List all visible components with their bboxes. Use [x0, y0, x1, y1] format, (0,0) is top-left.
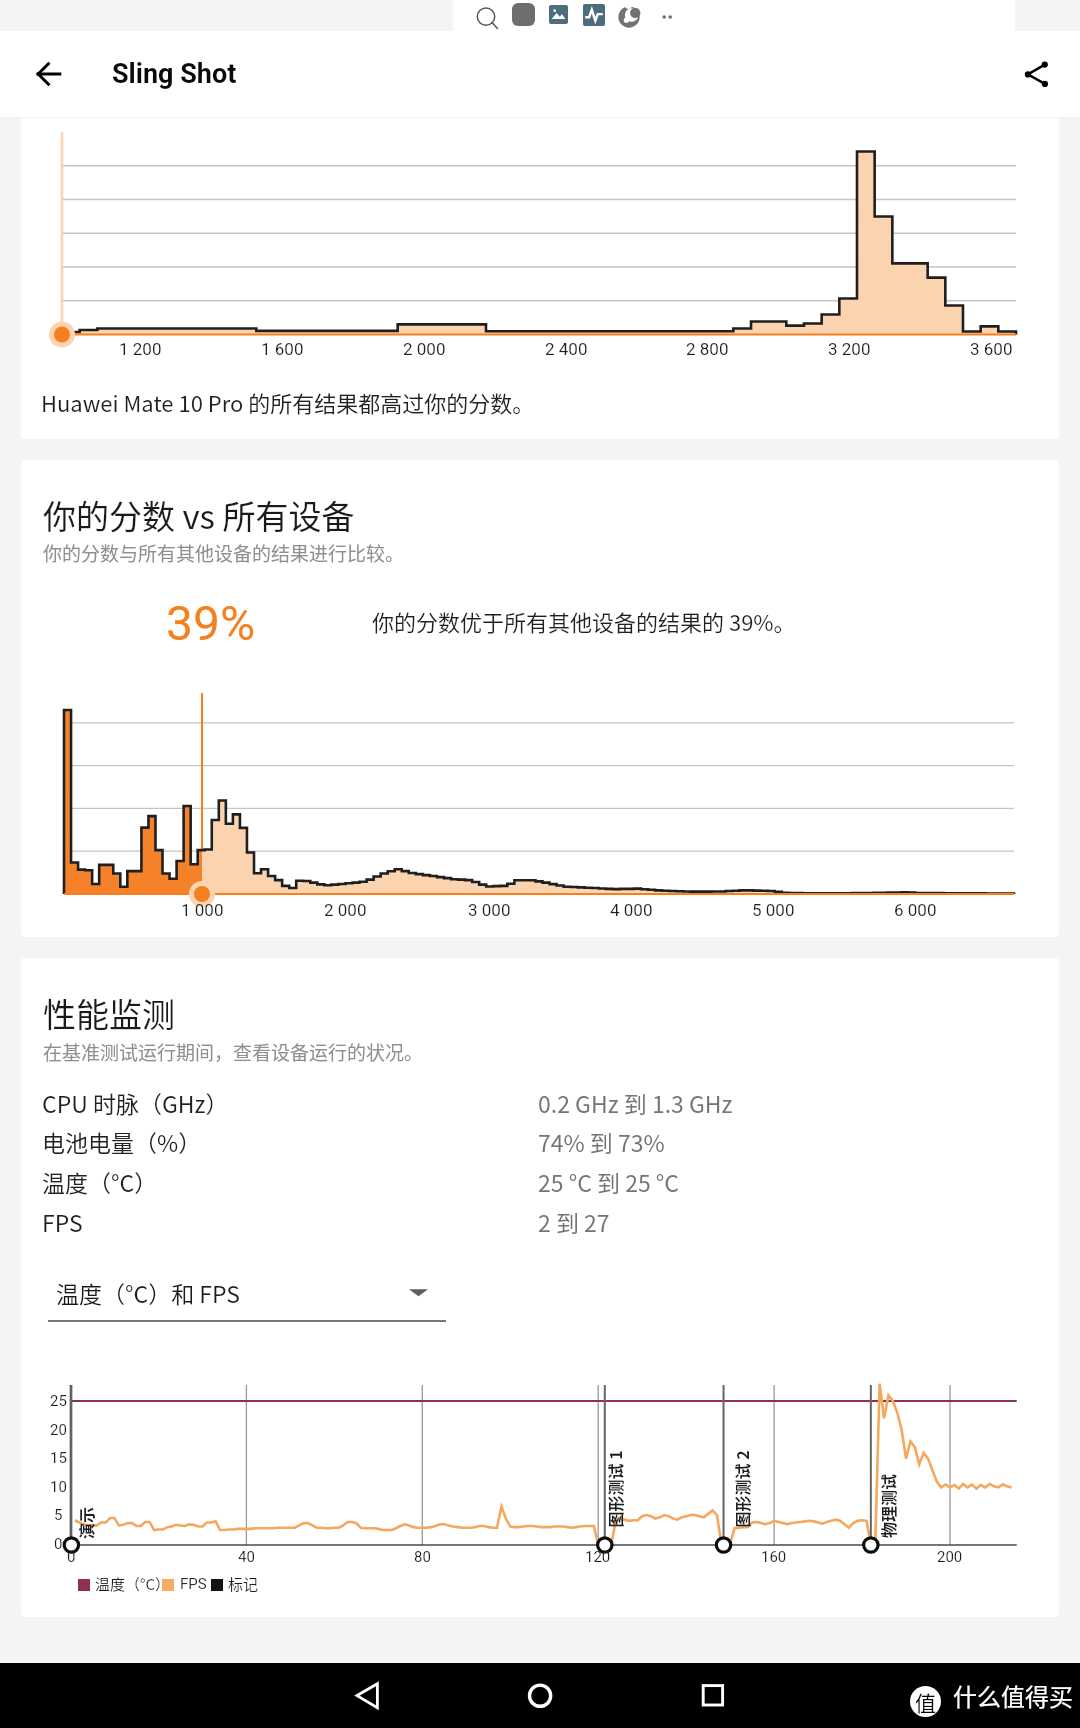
staticText: 你的分数与所有其他设备的结果进行比较。: [43, 539, 405, 567]
staticText: 0.2 GHz 到 1.3 GHz: [538, 1086, 733, 1119]
staticText: 2 800: [686, 339, 729, 359]
staticText: 1 600: [261, 339, 304, 359]
staticText: Sling Shot: [112, 58, 237, 90]
staticText: 图形测试 2: [729, 1449, 752, 1527]
staticText: 值: [915, 1687, 936, 1717]
staticText: 2 到 27: [538, 1205, 610, 1238]
staticText: 15: [50, 1449, 67, 1467]
staticText: 演示: [74, 1506, 97, 1539]
staticText: 性能监测: [43, 989, 175, 1037]
staticText: 25: [50, 1392, 67, 1410]
staticText: 标记: [228, 1573, 259, 1595]
staticText: 200: [937, 1548, 963, 1566]
staticText: 120: [585, 1548, 611, 1566]
button[interactable]: Share: [1010, 48, 1062, 100]
staticText: 在基准测试运行期间，查看设备运行的状况。: [43, 1038, 424, 1066]
staticText: 1 000: [181, 900, 224, 920]
staticText: 0: [67, 1548, 76, 1566]
button[interactable]: More: [657, 6, 681, 30]
staticText: 20: [50, 1421, 67, 1439]
button[interactable]: Stop: [512, 3, 535, 26]
staticText: 温度（°C）和 FPS: [56, 1276, 241, 1309]
staticText: 25 °C 到 25 °C: [538, 1165, 680, 1198]
staticText: 你的分数优于所有其他设备的结果的 39%。: [372, 605, 796, 637]
staticText: 160: [761, 1548, 787, 1566]
staticText: 6 000: [894, 900, 937, 920]
button[interactable]: 性能监测: [21, 958, 1059, 1617]
staticText: 40: [238, 1548, 255, 1566]
button[interactable]: Search: [473, 3, 504, 34]
button[interactable]: 1 200: [21, 118, 1059, 439]
button[interactable]: Image: [549, 5, 568, 24]
staticText: 图形测试 1: [602, 1449, 625, 1527]
button[interactable]: Home: [515, 1663, 565, 1713]
staticText: 2 000: [324, 900, 367, 920]
button[interactable]: Recents: [690, 1663, 740, 1713]
button[interactable]: Back: [23, 48, 75, 100]
staticText: 4 000: [610, 900, 653, 920]
staticText: Huawei Mate 10 Pro 的所有结果都高过你的分数。: [41, 386, 535, 418]
staticText: 1 200: [119, 339, 162, 359]
staticText: 0: [54, 1535, 63, 1553]
staticText: 10: [50, 1478, 67, 1496]
staticText: 温度（°C）: [95, 1573, 171, 1595]
staticText: 2 400: [545, 339, 588, 359]
staticText: 39%: [166, 595, 256, 651]
staticText: FPS: [180, 1575, 207, 1593]
staticText: 你的分数 vs 所有设备: [43, 491, 355, 539]
staticText: 电池电量（%）: [42, 1125, 202, 1158]
button[interactable]: Chart: [583, 4, 605, 26]
button[interactable]: 你的分数 vs 所有设备: [21, 460, 1059, 937]
button[interactable]: Firefox: [616, 3, 642, 29]
staticText: 3 200: [828, 339, 871, 359]
staticText: 什么值得买: [953, 1678, 1073, 1713]
button[interactable]: Back: [345, 1663, 395, 1713]
staticText: 物理测试: [876, 1473, 899, 1538]
staticText: CPU 时脉（GHz）: [42, 1086, 229, 1119]
staticText: 80: [414, 1548, 431, 1566]
staticText: 3 000: [468, 900, 511, 920]
staticText: 5: [54, 1506, 63, 1524]
staticText: 2 000: [403, 339, 446, 359]
staticText: 3 600: [970, 339, 1013, 359]
staticText: 74% 到 73%: [538, 1125, 665, 1158]
staticText: 5 000: [752, 900, 795, 920]
staticText: FPS: [42, 1205, 83, 1238]
button[interactable]: 温度（°C）和 FPS: [48, 1268, 446, 1322]
staticText: 温度（°C）: [42, 1165, 158, 1198]
